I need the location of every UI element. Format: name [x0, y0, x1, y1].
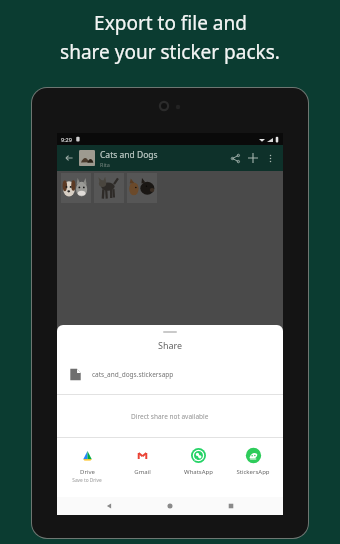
button[interactable]: More options [262, 150, 278, 166]
staticText: Cats and Dogs [100, 149, 158, 161]
staticText: Share [158, 339, 183, 351]
staticText: Direct share not available [131, 412, 209, 421]
staticText: Export to file and [94, 10, 247, 36]
button[interactable]: Sticker [94, 173, 124, 203]
button[interactable]: WhatsApp [173, 446, 223, 477]
button[interactable]: Back [62, 151, 76, 165]
staticText: Drive [80, 468, 95, 476]
button[interactable]: Back [100, 497, 118, 515]
staticText: share your sticker packs. [60, 39, 280, 65]
staticText: cats_and_dogs.stickersapp [92, 370, 174, 379]
staticText: Gmail [134, 468, 151, 476]
staticText: StickersApp [236, 468, 270, 476]
button[interactable]: Sticker [127, 173, 157, 203]
button[interactable]: Gmail [117, 446, 167, 477]
staticText: 9:29 [61, 136, 72, 143]
staticText: Save to Drive [72, 477, 102, 484]
button[interactable]: Home [161, 497, 179, 515]
button[interactable]: Add [244, 149, 262, 167]
button[interactable]: Sticker [61, 173, 91, 203]
button[interactable]: StickersApp [228, 446, 278, 477]
staticText: WhatsApp [184, 468, 213, 476]
staticText: Rita [100, 161, 110, 168]
button[interactable]: Share [226, 149, 244, 167]
button[interactable]: Recent apps [222, 497, 240, 515]
button[interactable]: Drive [62, 446, 112, 485]
button[interactable]: cats_and_dogs.stickersapp [57, 362, 283, 386]
